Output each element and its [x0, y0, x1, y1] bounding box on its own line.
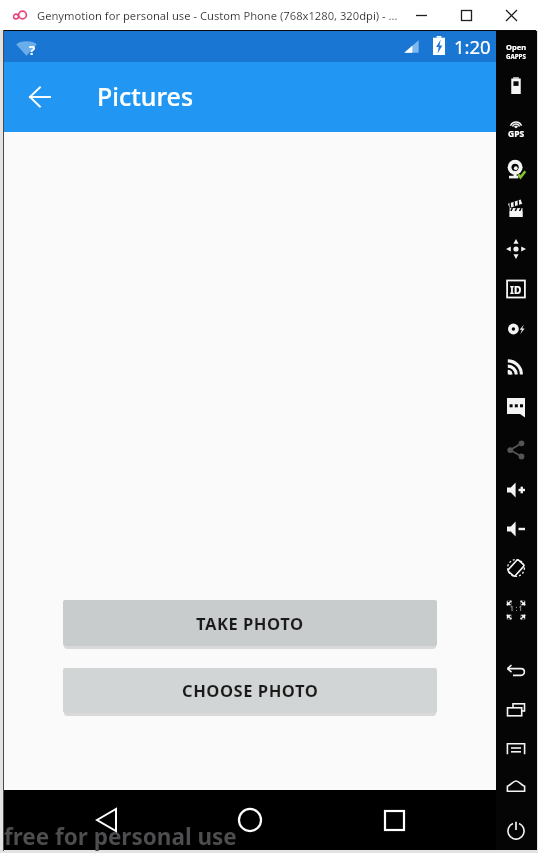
button[interactable]: Volume up [496, 473, 536, 507]
button[interactable]: OpenGApps [502, 42, 530, 60]
button[interactable]: Scale 1:1 [496, 593, 536, 627]
staticText: 1 : 1 [510, 604, 523, 613]
button[interactable]: Home [496, 769, 536, 803]
button[interactable]: Recents [496, 693, 536, 727]
button[interactable]: Share [496, 432, 536, 466]
button[interactable]: Flash [496, 312, 536, 346]
button[interactable]: Volume down [496, 512, 536, 546]
staticText: Genymotion for personal use - Custom Pho… [37, 8, 398, 23]
staticText: ? [29, 41, 36, 59]
staticText: CHOOSE PHOTO [182, 679, 319, 702]
staticText: free for personal use [4, 821, 237, 852]
staticText: TAKE PHOTO [196, 612, 304, 635]
button[interactable]: Recents [370, 796, 418, 844]
button[interactable]: Battery [496, 72, 536, 106]
button[interactable]: Minimize [399, 0, 444, 30]
button[interactable]: Maximize [444, 0, 489, 30]
button[interactable]: Rotate [496, 551, 536, 585]
staticText: Pictures [97, 79, 194, 113]
button[interactable]: TAKE PHOTO [63, 600, 437, 646]
button[interactable]: CHOOSE PHOTO [63, 668, 437, 713]
button[interactable]: Move [496, 232, 536, 266]
staticText: GPS [508, 128, 525, 140]
button[interactable]: Network [496, 350, 536, 384]
button[interactable]: Messages [496, 389, 536, 423]
button[interactable]: Back [82, 796, 130, 844]
button[interactable]: Close [489, 0, 534, 30]
staticText: Open [506, 42, 527, 52]
button[interactable]: Navigate up [15, 73, 63, 121]
staticText: 1:20 [454, 34, 491, 59]
button[interactable]: Power [496, 814, 536, 848]
button[interactable]: Menu [496, 732, 536, 766]
button[interactable]: GPS [496, 108, 536, 142]
button[interactable]: Home [226, 796, 274, 844]
staticText: GAPPS [506, 52, 526, 60]
button[interactable]: Video [496, 192, 536, 226]
button[interactable]: Camera [496, 153, 536, 187]
staticText: ID [510, 283, 522, 297]
button[interactable]: ID [496, 272, 536, 306]
button[interactable]: Back [496, 654, 536, 688]
